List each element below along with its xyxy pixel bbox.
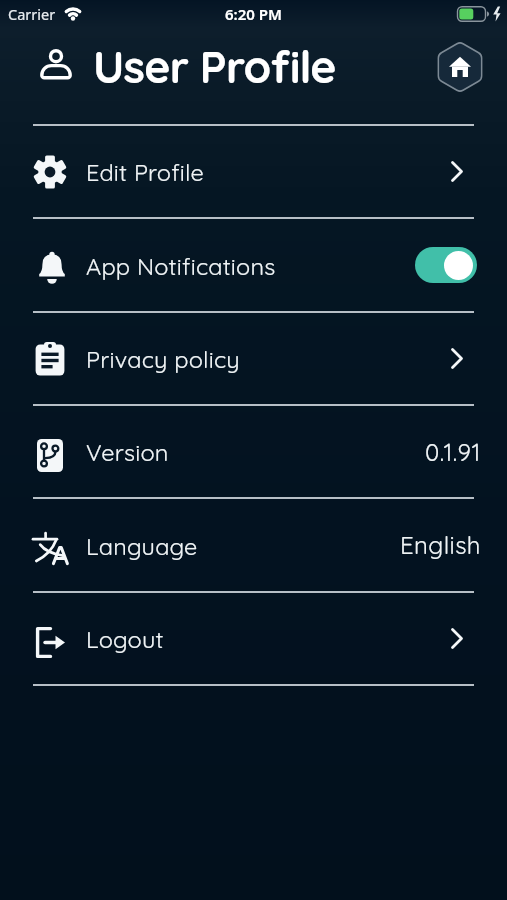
staticText: Edit Profile: [86, 157, 204, 186]
button[interactable]: [415, 247, 477, 283]
button[interactable]: Version: [0, 406, 507, 497]
staticText: User Profile: [93, 38, 336, 94]
staticText: Logout: [86, 624, 164, 653]
staticText: Version: [86, 437, 169, 466]
staticText: 0.1.91: [425, 437, 481, 467]
staticText: Language: [86, 531, 198, 560]
button[interactable]: Edit Profile: [0, 126, 507, 217]
button[interactable]: Language: [0, 499, 507, 591]
button[interactable]: App Notifications: [0, 219, 507, 311]
button[interactable]: Privacy policy: [0, 313, 507, 404]
staticText: 6:20 PM: [225, 4, 282, 24]
staticText: English: [400, 530, 481, 560]
staticText: Carrier: [8, 4, 56, 24]
button[interactable]: [434, 40, 486, 94]
staticText: Privacy policy: [86, 344, 240, 373]
staticText: App Notifications: [86, 251, 276, 280]
button[interactable]: Logout: [0, 593, 507, 684]
